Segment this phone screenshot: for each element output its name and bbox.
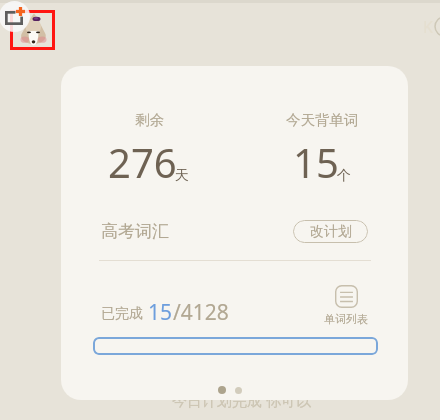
button[interactable]: 高考词汇 [101,221,169,242]
button[interactable]: Profile [21,13,46,44]
button[interactable]: 单词列表 [324,285,368,326]
staticText: 15 [148,298,173,327]
staticText: 天 [175,167,189,185]
staticText: 高考词汇 [101,221,169,242]
staticText: 已完成 [101,305,143,323]
staticText: K [423,16,433,38]
staticText: /4128 [173,298,229,327]
staticText: 改计划 [310,223,352,241]
staticText: 剩余 [135,111,164,129]
staticText: 个 [337,167,351,185]
staticText: 单词列表 [324,312,368,326]
button[interactable]: Page 1 [218,386,226,394]
staticText: 今日计划完成 你可以 [172,390,311,410]
staticText: 今天背单词 [286,111,359,129]
staticText: 15 [293,135,339,189]
button[interactable]: 改计划 [293,220,368,243]
staticText: 276 [108,135,177,189]
button[interactable]: 学习进度 [93,337,378,355]
button[interactable]: Page 2 [235,387,242,394]
